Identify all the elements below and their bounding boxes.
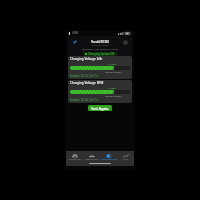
button[interactable]: Trip — [117, 154, 134, 161]
staticText: Charging Test — [101, 157, 117, 160]
button[interactable]: Vehicle Test — [66, 154, 83, 161]
staticText: Charging Voltage RPM — [70, 81, 104, 85]
staticText: Battery Test — [85, 157, 99, 160]
button[interactable]: Charging Voltage RPM — [68, 80, 132, 103]
button[interactable]: Battery Test — [83, 154, 100, 161]
button[interactable]: Charging Test — [100, 154, 117, 161]
staticText: Vehicle Test — [68, 157, 82, 160]
staticText: 4:58 — [72, 31, 78, 35]
staticText: Yuzuki RX350 — [91, 40, 109, 44]
staticText: Trip — [123, 157, 128, 160]
button[interactable]: Charging Voltage Idle — [68, 56, 132, 79]
button[interactable]: Edit vehicle — [72, 39, 78, 45]
staticText: Last Scan Today — [92, 44, 109, 47]
staticText: 14.12v — [108, 62, 116, 65]
staticText: Voltage 14.12v, Vol 1.6 — [70, 74, 99, 78]
button[interactable]: Settings — [122, 39, 128, 45]
staticText: Standard Range — [105, 95, 122, 98]
button[interactable]: Test Again — [88, 105, 112, 111]
staticText: Test Time : Aug 26 2023 01:44:02 — [82, 47, 119, 50]
staticText: Voltage 14.32v, Vol 1.6 — [70, 98, 99, 102]
staticText: Test Again — [91, 106, 109, 111]
staticText: 14.32v — [108, 86, 116, 89]
staticText: Charging Voltage Idle — [70, 57, 103, 61]
button[interactable]: Charging System OK — [83, 52, 117, 56]
staticText: Standard Range — [105, 71, 122, 74]
staticText: Charging System OK — [88, 52, 115, 56]
